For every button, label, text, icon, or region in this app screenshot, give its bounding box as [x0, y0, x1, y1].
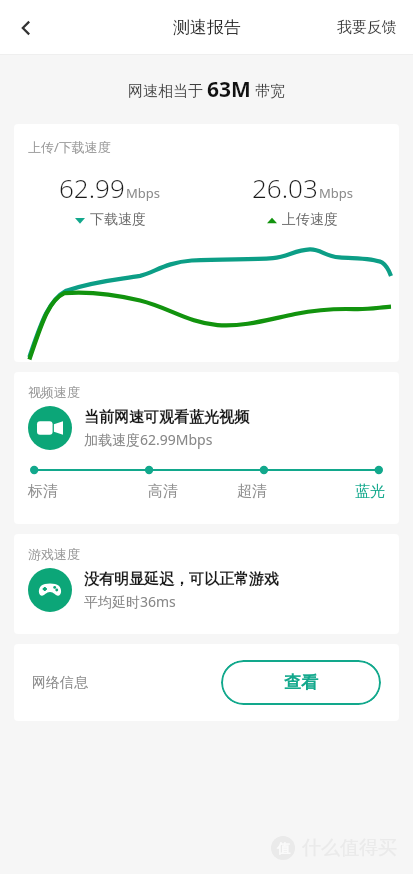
staticText: 蓝光	[355, 482, 385, 501]
staticText: Mbps	[319, 184, 354, 202]
staticText: 上传/下载速度	[28, 138, 111, 156]
staticText: 什么值得买	[302, 836, 397, 860]
staticText: 视频速度	[28, 384, 80, 400]
button[interactable]: 查看	[221, 660, 381, 705]
staticText: 加载速度62.99Mbps	[84, 430, 213, 449]
staticText: Mbps	[126, 184, 161, 202]
staticText: 查看	[284, 672, 318, 693]
staticText: 平均延时36ms	[84, 592, 176, 611]
staticText: 测速报告	[173, 17, 241, 38]
staticText: 62.99	[59, 170, 125, 205]
staticText: 下载速度	[90, 211, 146, 229]
staticText: 游戏速度	[28, 546, 80, 562]
staticText: 网速相当于	[128, 80, 207, 100]
staticText: 26.03	[252, 170, 318, 205]
staticText: 当前网速可观看蓝光视频	[84, 408, 249, 427]
staticText: 标清	[28, 482, 58, 501]
staticText: 上传速度	[282, 211, 338, 229]
staticText: 超清	[237, 482, 267, 501]
button[interactable]: Back	[0, 0, 52, 55]
staticText: 高清	[148, 482, 178, 501]
staticText: 带宽	[251, 80, 285, 100]
staticText: 网络信息	[32, 674, 88, 692]
button[interactable]: 我要反馈	[321, 0, 413, 55]
staticText: 我要反馈	[337, 18, 397, 37]
staticText: 63M	[207, 75, 251, 104]
staticText: 值	[277, 840, 290, 856]
staticText: 没有明显延迟，可以正常游戏	[84, 570, 279, 589]
